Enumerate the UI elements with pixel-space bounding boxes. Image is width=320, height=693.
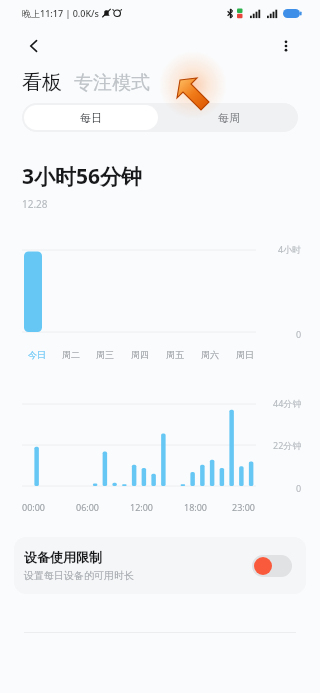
staticText: 0 (296, 482, 302, 494)
staticText: 3小时56分钟 (22, 162, 143, 191)
button[interactable]: 看板 (22, 70, 62, 95)
button[interactable]: 设备使用限制 toggle (252, 555, 292, 577)
staticText: 06:00 (76, 501, 100, 513)
staticText: 每周 (218, 111, 240, 125)
staticText: 22分钟 (273, 439, 302, 451)
staticText: 周四 (131, 349, 149, 360)
staticText: 周六 (201, 349, 219, 360)
staticText: 晚上11:17 | 0.0K/s (22, 7, 99, 19)
button[interactable]: More options (268, 28, 304, 64)
button[interactable]: 每日 (24, 105, 158, 130)
staticText: 今日 (28, 349, 46, 360)
button[interactable]: 设备使用限制 (14, 537, 306, 594)
staticText: 12.28 (22, 197, 48, 211)
staticText: 23:00 (232, 501, 256, 513)
staticText: 18:00 (184, 501, 208, 513)
staticText: 设置每日设备的可用时长 (24, 569, 134, 582)
staticText: 每日 (80, 111, 102, 125)
staticText: 周日 (236, 349, 254, 360)
staticText: 44分钟 (273, 397, 302, 409)
staticText: 00:00 (22, 501, 46, 513)
staticText: 设备使用限制 (24, 549, 102, 565)
staticText: 12:00 (130, 501, 154, 513)
staticText: 周二 (62, 349, 80, 360)
staticText: 专注模式 (74, 71, 150, 95)
staticText: 看板 (22, 70, 62, 95)
staticText: 4小时 (278, 243, 302, 255)
staticText: 0 (296, 328, 302, 340)
staticText: 周五 (166, 349, 184, 360)
staticText: 周三 (96, 349, 114, 360)
button[interactable]: Back (16, 28, 52, 64)
button[interactable]: 专注模式 (74, 71, 150, 95)
button[interactable]: 每周 (160, 103, 298, 132)
